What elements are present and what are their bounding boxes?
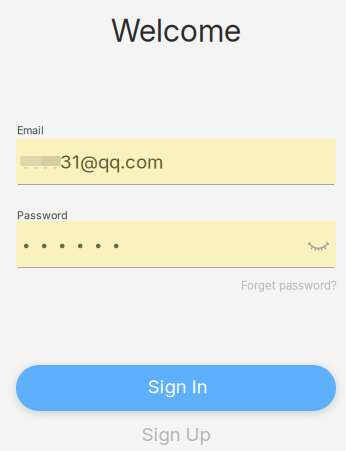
button[interactable]: Sign Up (3, 423, 346, 446)
staticText: Password (17, 209, 68, 222)
staticText: Forget password? (241, 279, 337, 293)
button[interactable]: Forget password? (241, 279, 337, 293)
staticText: 31@qq.com (60, 150, 163, 173)
staticText: Email (17, 124, 44, 137)
button[interactable]: Show password (302, 236, 335, 258)
button[interactable]: Sign In (16, 365, 336, 411)
staticText: Welcome (111, 12, 241, 49)
staticText: Sign Up (141, 423, 210, 446)
staticText: Sign In (147, 375, 207, 398)
